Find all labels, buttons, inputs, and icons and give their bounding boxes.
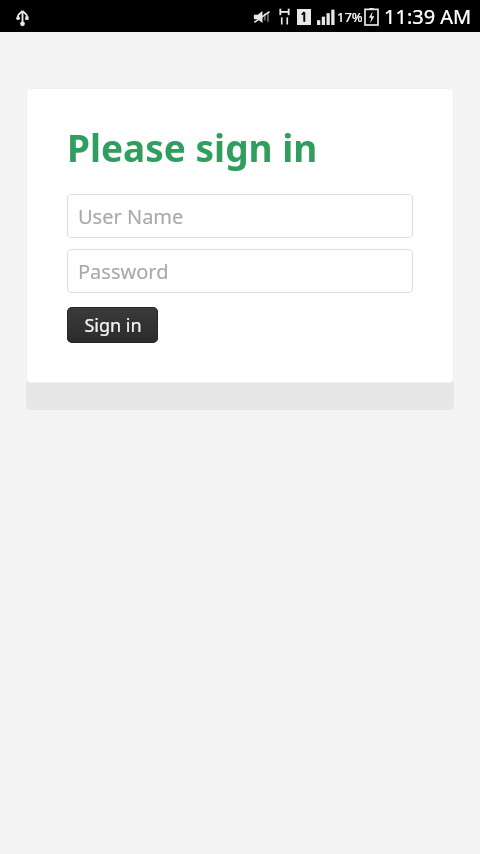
staticText: Sign in [84, 313, 142, 338]
button[interactable]: Sign in [67, 307, 158, 343]
staticText: User Name [78, 203, 184, 230]
staticText: Please sign in [67, 122, 318, 172]
staticText: 17% [337, 8, 363, 26]
staticText: Password [78, 258, 169, 285]
button[interactable]: User Name [67, 194, 413, 238]
staticText: 11:39 AM [384, 3, 472, 30]
button[interactable]: Password [67, 249, 413, 293]
